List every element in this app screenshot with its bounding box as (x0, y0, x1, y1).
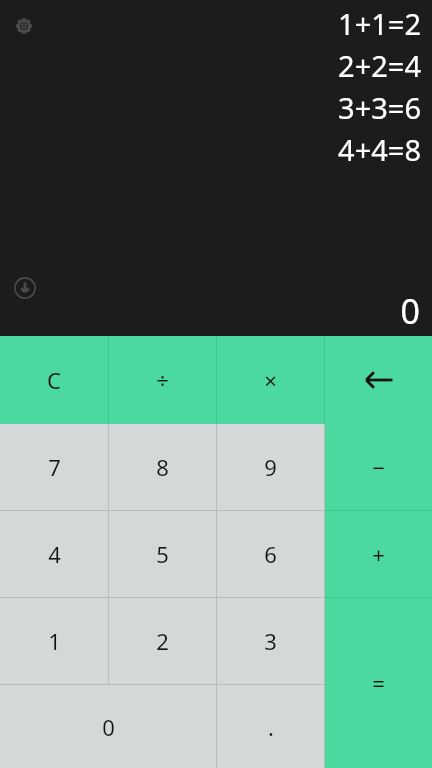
button[interactable]: + (325, 511, 432, 597)
button[interactable]: 9 (217, 424, 324, 510)
staticText: 7 (48, 452, 61, 482)
button[interactable]: Backspace (325, 336, 432, 424)
button[interactable]: Settings (9, 11, 39, 41)
button[interactable]: − (325, 424, 432, 510)
staticText: ÷ (156, 365, 169, 395)
button[interactable]: 6 (217, 511, 324, 597)
staticText: 4+4=8 (338, 130, 421, 169)
staticText: 0 (400, 288, 420, 334)
button[interactable]: 4+4=8 (338, 128, 421, 170)
staticText: 0 (102, 712, 115, 742)
staticText: 8 (156, 452, 169, 482)
button[interactable]: 0 (0, 685, 216, 768)
staticText: 4 (48, 539, 61, 569)
staticText: × (264, 365, 277, 395)
staticText: 6 (264, 539, 277, 569)
button[interactable]: 3 (217, 598, 324, 684)
button[interactable]: × (217, 336, 324, 424)
staticText: 3+3=6 (338, 88, 421, 127)
staticText: 9 (264, 452, 277, 482)
staticText: 3 (264, 626, 277, 656)
button[interactable]: 1 (0, 598, 108, 684)
button[interactable]: Show history (10, 273, 40, 303)
button[interactable]: 2 (109, 598, 216, 684)
button[interactable]: 4 (0, 511, 108, 597)
button[interactable]: 3+3=6 (338, 86, 421, 128)
button[interactable]: . (217, 685, 324, 768)
button[interactable]: C (0, 336, 108, 424)
staticText: 2 (156, 626, 169, 656)
button[interactable]: 2+2=4 (338, 44, 421, 86)
staticText: 5 (156, 539, 169, 569)
staticText: 1 (48, 626, 61, 656)
staticText: = (372, 668, 385, 698)
button[interactable]: ÷ (109, 336, 216, 424)
staticText: + (372, 539, 385, 569)
staticText: . (268, 712, 274, 742)
staticText: 2+2=4 (338, 46, 421, 85)
button[interactable]: 8 (109, 424, 216, 510)
button[interactable]: 5 (109, 511, 216, 597)
button[interactable]: 1+1=2 (338, 2, 421, 44)
staticText: − (372, 452, 385, 482)
button[interactable]: 7 (0, 424, 108, 510)
button[interactable]: = (325, 598, 432, 768)
staticText: C (47, 365, 61, 395)
staticText: 1+1=2 (338, 4, 421, 43)
